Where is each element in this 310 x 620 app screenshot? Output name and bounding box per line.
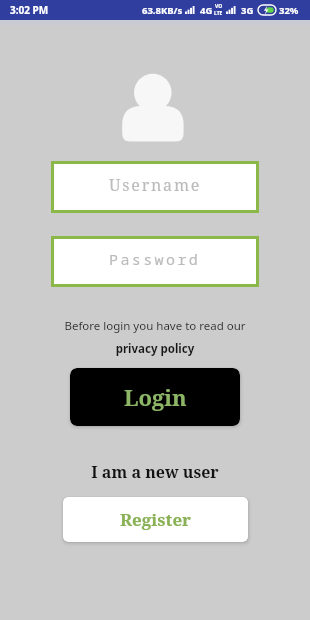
staticText: Login xyxy=(124,382,187,412)
button[interactable]: Register xyxy=(63,497,248,542)
button[interactable]: Password input field xyxy=(51,236,259,287)
staticText: LTE xyxy=(214,10,223,17)
staticText: 3G xyxy=(241,4,254,17)
button[interactable]: Username input field xyxy=(51,161,259,213)
button[interactable]: privacy policy xyxy=(0,341,310,357)
staticText: 63.8KB/s xyxy=(142,4,183,17)
button[interactable]: Login xyxy=(70,368,240,426)
staticText: Password xyxy=(109,249,201,269)
staticText: 32% xyxy=(279,4,299,17)
staticText: 3:02 PM xyxy=(10,3,49,17)
staticText: Username xyxy=(109,174,202,196)
staticText: I am a new user xyxy=(0,461,310,483)
staticText: VO xyxy=(215,3,223,10)
staticText: Before login you have to read our xyxy=(0,318,310,334)
staticText: 4G xyxy=(200,4,213,17)
staticText: Register xyxy=(120,508,192,531)
